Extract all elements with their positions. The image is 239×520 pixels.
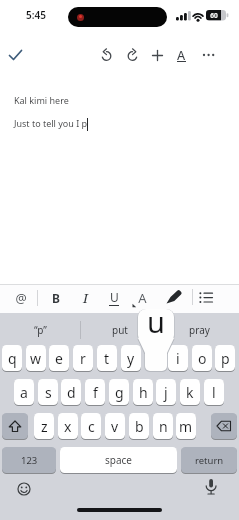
staticText: w (30, 349, 42, 368)
button[interactable]: w (26, 345, 46, 371)
button[interactable]: r (73, 345, 93, 371)
button[interactable]: o (192, 345, 212, 371)
staticText: b (135, 417, 144, 436)
staticText: d (67, 383, 76, 402)
staticText: p (221, 349, 230, 368)
staticText: c (88, 417, 95, 436)
staticText: l (212, 383, 216, 402)
button[interactable]: a (14, 379, 34, 405)
staticText: i (176, 349, 180, 368)
button[interactable]: “p” (0, 320, 80, 340)
staticText: v (111, 417, 119, 436)
button[interactable]: space (60, 447, 177, 473)
staticText: U (110, 289, 119, 305)
staticText: f (93, 383, 98, 402)
button[interactable]: p (215, 345, 235, 371)
button[interactable]: v (105, 413, 125, 439)
staticText: m (179, 417, 193, 436)
staticText: B (52, 290, 60, 306)
button[interactable] (6, 46, 26, 64)
button[interactable] (125, 48, 140, 63)
button[interactable]: d (61, 379, 81, 405)
button[interactable]: 123 (2, 447, 56, 473)
button[interactable] (151, 49, 164, 62)
staticText: 5:45 (26, 8, 46, 22)
staticText: j (164, 383, 168, 402)
staticText: “p” (34, 323, 47, 337)
button[interactable]: g (109, 379, 129, 405)
button[interactable]: c (81, 413, 101, 439)
button[interactable]: e (49, 345, 69, 371)
button[interactable]: I (76, 289, 94, 307)
button[interactable] (200, 50, 218, 60)
button[interactable]: B (47, 289, 65, 307)
button[interactable]: @ (12, 289, 30, 307)
button[interactable]: n (153, 413, 173, 439)
button[interactable]: f (85, 379, 105, 405)
button[interactable]: A (133, 289, 151, 307)
staticText: o (198, 349, 207, 368)
staticText: Kal kimi here (14, 94, 69, 106)
button[interactable]: h (133, 379, 153, 405)
staticText: k (186, 383, 194, 402)
staticText: q (8, 349, 17, 368)
button[interactable]: s (38, 379, 58, 405)
button[interactable] (211, 413, 237, 439)
staticText: u (147, 302, 165, 339)
staticText: Just to tell you I p (14, 117, 88, 129)
button[interactable]: j (156, 379, 176, 405)
staticText: 123 (21, 454, 38, 467)
staticText: a (20, 383, 28, 402)
button[interactable]: x (58, 413, 78, 439)
button[interactable]: U (105, 288, 123, 306)
staticText: A (177, 47, 186, 64)
staticText: t (104, 349, 110, 368)
staticText: 60 (210, 11, 218, 20)
staticText: put (112, 323, 128, 337)
staticText: x (64, 417, 72, 436)
button[interactable]: m (176, 413, 196, 439)
staticText: z (41, 417, 48, 436)
button[interactable]: i (168, 345, 188, 371)
staticText: A (138, 289, 147, 307)
button[interactable]: pray (160, 320, 239, 340)
button[interactable] (99, 48, 114, 63)
button[interactable]: return (181, 447, 237, 473)
staticText: pray (189, 323, 210, 337)
staticText: r (80, 349, 86, 368)
button[interactable] (2, 413, 28, 439)
button[interactable]: b (129, 413, 149, 439)
button[interactable]: z (34, 413, 54, 439)
button[interactable]: q (2, 345, 22, 371)
button[interactable]: A (174, 46, 189, 64)
button[interactable] (202, 477, 220, 499)
button[interactable] (14, 479, 34, 499)
staticText: y (127, 349, 135, 368)
staticText: return (195, 454, 224, 467)
button[interactable]: t (97, 345, 117, 371)
button[interactable]: l (204, 379, 224, 405)
staticText: e (55, 349, 63, 368)
button[interactable]: put (80, 320, 160, 340)
button[interactable]: k (180, 379, 200, 405)
staticText: h (139, 383, 148, 402)
staticText: @ (15, 290, 27, 307)
staticText: space (105, 453, 132, 467)
staticText: n (159, 417, 168, 436)
button[interactable]: y (121, 345, 141, 371)
staticText: I (83, 289, 88, 307)
staticText: g (115, 383, 124, 402)
button[interactable] (165, 289, 184, 306)
staticText: s (45, 383, 52, 402)
button[interactable] (198, 290, 215, 305)
